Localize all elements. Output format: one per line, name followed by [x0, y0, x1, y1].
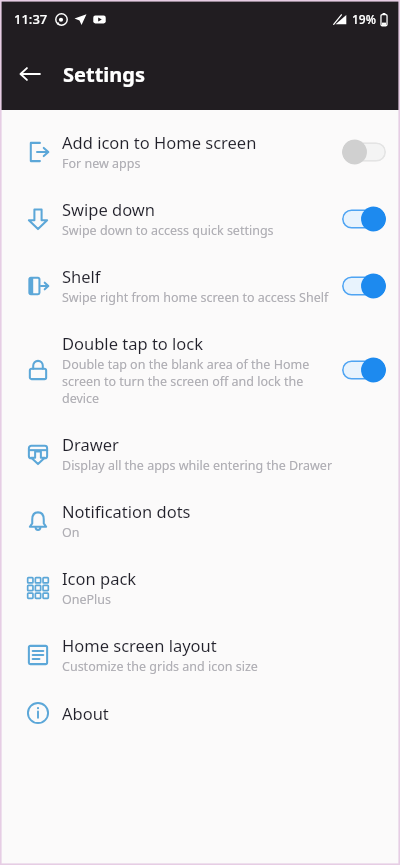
staticText: About — [62, 702, 109, 724]
staticText: Swipe down to access quick settings — [62, 222, 274, 239]
staticText: OnePlus — [62, 591, 112, 608]
staticText: Double tap on the blank area of the Home… — [62, 356, 332, 407]
staticText: Customize the grids and icon size — [62, 658, 258, 675]
staticText: Display all the apps while entering the … — [62, 457, 333, 474]
button[interactable]: Swipe down — [0, 185, 400, 252]
button[interactable]: Toggle on — [342, 273, 386, 299]
staticText: Home screen layout — [62, 634, 217, 656]
button[interactable]: Double tap to lock — [0, 319, 400, 420]
staticText: Settings — [63, 61, 145, 88]
button[interactable]: Home screen layout — [0, 621, 400, 688]
staticText: For new apps — [62, 155, 141, 172]
staticText: Drawer — [62, 433, 119, 455]
staticText: Shelf — [62, 265, 101, 287]
staticText: Swipe down — [62, 198, 155, 220]
staticText: 11:37 — [14, 10, 48, 28]
button[interactable]: Notification dots — [0, 487, 400, 554]
staticText: Add icon to Home screen — [62, 131, 257, 153]
button[interactable]: Back — [8, 52, 52, 96]
staticText: On — [62, 524, 80, 541]
staticText: Notification dots — [62, 500, 191, 522]
staticText: Double tap to lock — [62, 332, 204, 354]
staticText: 19% — [352, 11, 376, 27]
staticText: Icon pack — [62, 567, 137, 589]
button[interactable]: Toggle off — [342, 139, 386, 165]
button[interactable]: About — [0, 688, 400, 738]
button[interactable]: Add icon to Home screen — [0, 118, 400, 185]
button[interactable]: Shelf — [0, 252, 400, 319]
staticText: Swipe right from home screen to access S… — [62, 289, 329, 306]
button[interactable]: Drawer — [0, 420, 400, 487]
button[interactable]: Toggle on — [342, 206, 386, 232]
button[interactable]: Icon pack — [0, 554, 400, 621]
button[interactable]: Toggle on — [342, 357, 386, 383]
